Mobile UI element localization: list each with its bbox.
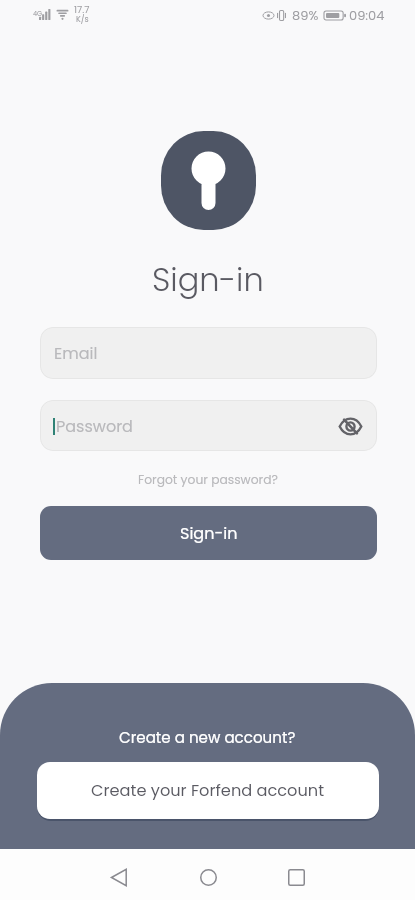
staticText: 89% [292,6,319,24]
staticText: Password [56,415,133,437]
button[interactable]: Show password [338,414,362,438]
button[interactable]: Back [99,857,139,897]
staticText: Email [54,342,98,364]
button[interactable]: Password [40,400,377,451]
staticText: K/s [76,14,89,25]
staticText: 17.7 [74,3,90,16]
button[interactable]: Home [188,857,228,897]
button[interactable]: Recents [276,857,316,897]
button[interactable]: Sign-in [40,506,377,560]
button[interactable]: Create your Forfend account [37,762,379,819]
staticText: Sign-in [152,257,264,302]
button[interactable]: Email [40,327,377,379]
button[interactable]: Forgot your password? [132,468,284,491]
staticText: Create your Forfend account [91,779,325,802]
staticText: Create a new account? [119,727,296,748]
staticText: 09:04 [349,6,385,24]
staticText: 4G [33,9,43,18]
staticText: Sign-in [180,522,238,544]
